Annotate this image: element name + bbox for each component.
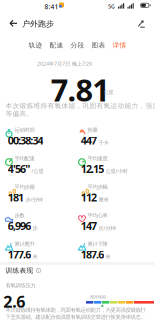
staticText: 热量 <box>88 127 98 133</box>
staticText: 累计下降 <box>88 241 108 247</box>
staticText: 112 <box>81 190 97 204</box>
staticText: 米 <box>33 253 38 260</box>
staticText: 2.6 <box>3 291 25 312</box>
button[interactable]: 轨迹 <box>24 39 46 51</box>
staticText: 6,996 <box>8 219 31 233</box>
staticText: 平均步频 <box>15 184 35 190</box>
staticText: 米 <box>106 253 111 260</box>
staticText: 平均步幅 <box>88 184 108 190</box>
staticText: 详情 <box>112 41 126 49</box>
button[interactable]: Share <box>137 19 146 28</box>
staticText: 7.81 <box>51 69 110 110</box>
staticText: 维持体能 <box>90 294 106 299</box>
staticText: 8:41 <box>44 2 58 11</box>
staticText: 4'56" <box>8 162 30 176</box>
staticText: 平均速度 <box>88 155 108 162</box>
staticText: /公里 <box>32 167 44 174</box>
staticText: 5G <box>108 3 115 10</box>
staticText: 轨迹 <box>28 41 42 49</box>
staticText: 图表 <box>91 41 105 49</box>
staticText: 训练表现 <box>5 266 33 275</box>
staticText: 平均配速 <box>15 155 35 162</box>
staticText: 00:38:34 <box>8 133 43 147</box>
staticText: 下坚实基础。建议配合低强度有氧训练交替进行恢复身体状态。 <box>5 314 145 320</box>
staticText: 12.15 <box>81 162 104 176</box>
button[interactable]: 配速 <box>45 39 67 51</box>
staticText: 177.6 <box>8 247 31 261</box>
staticText: 有氧训练压力 <box>5 282 35 289</box>
staticText: 本次锻炼维持有氧体能，巩固有氧运动能力，强度中 <box>5 102 155 110</box>
staticText: 厘米 <box>98 196 108 203</box>
staticText: 次/分钟 <box>98 224 115 232</box>
staticText: 户外跑步 <box>22 19 54 29</box>
staticText: 运动时间 <box>15 127 35 133</box>
staticText: 公里/小时 <box>106 167 128 175</box>
staticText: 平均心率 <box>88 212 108 219</box>
staticText: 187.6 <box>81 247 104 261</box>
staticText: 千卡 <box>98 139 108 146</box>
staticText: 配速 <box>49 41 63 49</box>
staticText: 181 <box>8 190 24 204</box>
staticText: 本次锻炼维持有氧体能，巩固有氧运动能力，为更高强度锻炼打 <box>5 307 145 313</box>
button[interactable]: 详情 <box>108 39 130 51</box>
staticText: 累计爬升 <box>15 241 35 247</box>
button[interactable]: 训练表现说明 <box>36 268 41 273</box>
staticText: 2024年7月7日 晚上7:29 <box>37 60 92 67</box>
staticText: 步/分钟 <box>25 196 42 203</box>
staticText: 147 <box>81 219 97 233</box>
button[interactable]: Back <box>9 19 18 27</box>
staticText: 步 <box>33 225 38 232</box>
button[interactable]: 图表 <box>87 39 109 51</box>
staticText: 447 <box>81 133 97 147</box>
staticText: 分段 <box>70 41 84 49</box>
button[interactable]: 分段 <box>66 39 88 51</box>
staticText: 等偏高。 <box>5 110 33 118</box>
staticText: 步数 <box>15 212 25 219</box>
staticText: 公里 <box>103 89 113 96</box>
